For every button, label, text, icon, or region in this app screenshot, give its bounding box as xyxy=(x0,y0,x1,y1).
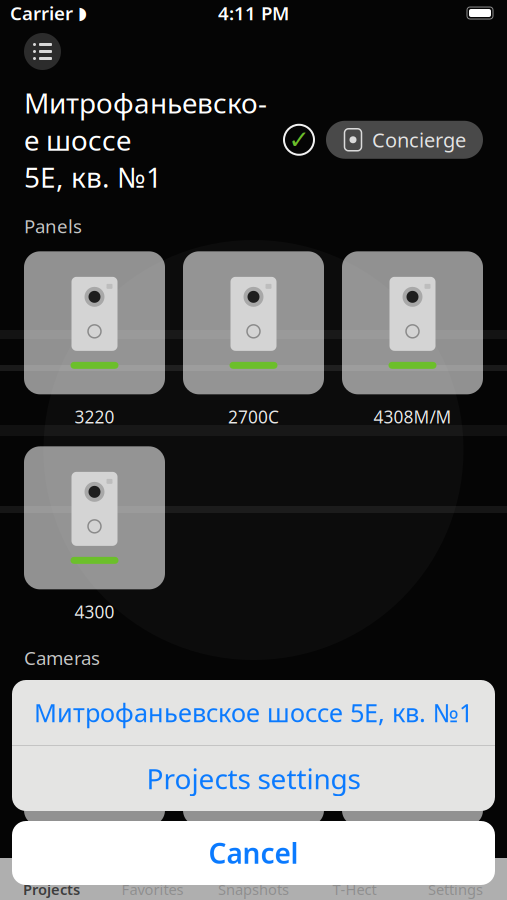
staticText: Митрофаньевское шоссе 5Е, кв. №1 xyxy=(34,696,473,729)
staticText: 3220 xyxy=(74,405,114,428)
button[interactable]: Snapshots xyxy=(203,859,304,899)
staticText: 4308M/M xyxy=(373,405,451,428)
button[interactable]: 4300 xyxy=(24,446,165,623)
staticText: Cancel xyxy=(208,834,298,872)
staticText: 2700C xyxy=(228,405,279,428)
staticText: Projects xyxy=(23,879,80,899)
button[interactable] xyxy=(342,683,483,826)
button[interactable]: Cancel xyxy=(12,821,495,885)
button[interactable]: Projects xyxy=(1,859,102,899)
staticText: ✓ xyxy=(288,125,309,154)
staticText: Favorites xyxy=(121,879,183,899)
button[interactable]: Favorites xyxy=(102,859,203,899)
staticText: Snapshots xyxy=(218,879,289,899)
staticText: Cameras xyxy=(24,645,100,670)
staticText: Митрофаньевское шоссе 5Е, кв. №1 xyxy=(24,84,267,195)
staticText: ◗ xyxy=(78,3,87,23)
button[interactable]: Concierge xyxy=(326,121,483,159)
button[interactable]: 3220 xyxy=(24,251,165,428)
staticText: 4:11 PM xyxy=(218,1,289,25)
button[interactable]: Settings xyxy=(405,859,506,899)
button[interactable] xyxy=(183,683,324,826)
staticText: T-Hect xyxy=(332,879,376,899)
staticText: 4300 xyxy=(74,600,114,623)
staticText: Carrier xyxy=(10,1,73,25)
button[interactable]: Menu xyxy=(24,33,61,70)
staticText: Panels xyxy=(24,213,82,238)
button[interactable]: T-Hect xyxy=(304,859,405,899)
staticText: Projects settings xyxy=(146,760,360,797)
button[interactable] xyxy=(24,683,165,826)
staticText: Settings xyxy=(428,879,483,899)
staticText: Concierge xyxy=(372,126,466,153)
button[interactable]: Митрофаньевское шоссе 5Е, кв. №1 xyxy=(12,680,495,745)
button[interactable]: Projects settings xyxy=(12,746,495,811)
button[interactable]: 4308M/M xyxy=(342,251,483,428)
button[interactable]: 2700C xyxy=(183,251,324,428)
